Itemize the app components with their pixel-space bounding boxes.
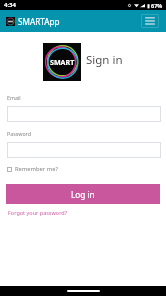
staticText: Log in <box>71 189 95 200</box>
button[interactable]: Remember me? <box>7 165 58 173</box>
staticText: Sign in <box>86 52 123 68</box>
staticText: Email <box>7 94 21 101</box>
staticText: 67% <box>151 2 163 9</box>
button[interactable]: Open navigation menu <box>141 14 159 28</box>
staticText: SMARTApp <box>18 16 60 27</box>
button[interactable]: Log in <box>6 184 160 204</box>
staticText: SMART <box>50 57 75 67</box>
button[interactable]: Email input <box>7 106 161 122</box>
button[interactable]: Forgot your password? <box>8 209 68 216</box>
staticText: Remember me? <box>15 165 58 173</box>
button[interactable]: Password input <box>7 142 161 158</box>
staticText: 4:34 <box>4 1 16 9</box>
staticText: Password <box>7 130 31 137</box>
